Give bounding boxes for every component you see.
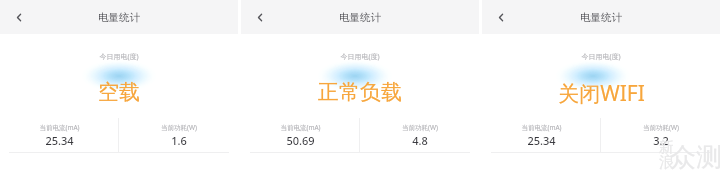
staticText: 浪 <box>659 153 674 171</box>
staticText: 正常负载 <box>318 79 402 105</box>
button[interactable]: 当前电流(mA) <box>482 118 600 152</box>
button[interactable]: Back <box>6 4 32 30</box>
staticText: 今日用电(度) <box>340 52 380 62</box>
button[interactable]: Back <box>488 4 514 30</box>
staticText: 当前功耗(W) <box>161 123 197 132</box>
staticText: 电量统计 <box>580 11 622 24</box>
staticText: 众测 <box>670 141 720 171</box>
button[interactable]: 当前电流(mA) <box>0 118 118 152</box>
staticText: 3.2 <box>653 133 669 148</box>
button[interactable]: 当前功耗(W) <box>119 118 238 152</box>
staticText: 当前电流(mA) <box>521 123 562 132</box>
staticText: 当前电流(mA) <box>39 123 80 132</box>
staticText: 25.34 <box>527 133 556 148</box>
staticText: 关闭WIFI <box>558 79 645 108</box>
staticText: 当前电流(mA) <box>280 123 321 132</box>
button[interactable]: 当前功耗(W) <box>360 118 479 152</box>
staticText: 50.69 <box>286 133 315 148</box>
staticText: 今日用电(度) <box>99 52 139 62</box>
staticText: 新 <box>659 138 674 157</box>
staticText: 今日用电(度) <box>581 52 621 62</box>
button[interactable]: 当前电流(mA) <box>241 118 359 152</box>
staticText: 电量统计 <box>339 11 381 24</box>
button[interactable]: 当前功耗(W) <box>601 118 720 152</box>
staticText: 当前功耗(W) <box>643 123 679 132</box>
staticText: 空载 <box>98 79 140 105</box>
staticText: 当前功耗(W) <box>402 123 438 132</box>
staticText: 25.34 <box>45 133 74 148</box>
staticText: 4.8 <box>412 133 428 148</box>
button[interactable]: Back <box>247 4 273 30</box>
staticText: 电量统计 <box>98 11 140 24</box>
staticText: 1.6 <box>171 133 187 148</box>
